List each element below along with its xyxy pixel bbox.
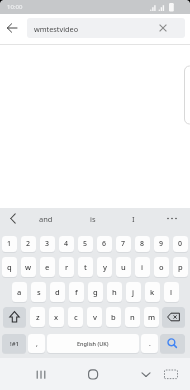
staticText: wmtestvideo <box>34 24 79 34</box>
staticText: j <box>132 287 135 297</box>
staticText: , <box>36 339 38 348</box>
button[interactable]: e <box>40 257 55 277</box>
staticText: !#1 <box>10 340 19 348</box>
button[interactable]: j <box>126 282 141 302</box>
button[interactable] <box>160 210 184 227</box>
button[interactable]: I <box>115 210 151 227</box>
staticText: 4 <box>64 239 69 249</box>
staticText: x <box>54 312 59 322</box>
staticText: b <box>111 312 116 322</box>
button[interactable]: d <box>50 282 65 302</box>
button[interactable]: z <box>30 307 45 327</box>
button[interactable]: 0 <box>173 236 188 252</box>
button[interactable]: c <box>68 307 83 327</box>
staticText: 2 <box>26 239 31 249</box>
staticText: u <box>121 262 126 272</box>
button[interactable] <box>85 366 101 382</box>
staticText: v <box>93 312 97 322</box>
button[interactable] <box>160 334 185 353</box>
staticText: k <box>150 287 155 297</box>
button[interactable]: r <box>59 257 74 277</box>
staticText: 6 <box>102 239 107 249</box>
button[interactable]: 1 <box>2 236 17 252</box>
button[interactable]: u <box>116 257 131 277</box>
button[interactable]: n <box>125 307 140 327</box>
button[interactable]: . <box>141 334 158 353</box>
staticText: d <box>55 287 60 297</box>
button[interactable] <box>162 307 185 327</box>
button[interactable]: i <box>135 257 150 277</box>
staticText: 5 <box>83 239 88 249</box>
staticText: f <box>75 287 78 297</box>
button[interactable]: 9 <box>154 236 169 252</box>
button[interactable] <box>4 20 20 36</box>
button[interactable] <box>33 366 49 382</box>
button[interactable]: l <box>164 282 179 302</box>
staticText: 7 <box>121 239 126 249</box>
staticText: r <box>65 262 69 272</box>
staticText: y <box>103 262 107 272</box>
staticText: e <box>45 262 50 272</box>
button[interactable] <box>3 307 26 327</box>
button[interactable]: 5 <box>78 236 93 252</box>
button[interactable] <box>4 210 22 227</box>
button[interactable]: 6 <box>97 236 112 252</box>
staticText: 1 <box>7 239 12 249</box>
button[interactable]: and <box>27 210 65 227</box>
staticText: a <box>17 287 22 297</box>
staticText: . <box>149 339 151 348</box>
button[interactable]: w <box>21 257 36 277</box>
staticText: i <box>141 262 144 272</box>
button[interactable]: a <box>12 282 27 302</box>
button[interactable]: s <box>31 282 46 302</box>
button[interactable]: !#1 <box>2 334 26 353</box>
button[interactable]: o <box>154 257 169 277</box>
button[interactable] <box>163 367 179 381</box>
staticText: z <box>36 312 40 322</box>
staticText: 10:00 <box>7 3 23 11</box>
button[interactable]: m <box>144 307 159 327</box>
staticText: h <box>112 287 117 297</box>
button[interactable]: y <box>97 257 112 277</box>
staticText: 3 <box>45 239 50 249</box>
button[interactable]: 4 <box>59 236 74 252</box>
staticText: 8 <box>140 239 145 249</box>
staticText: s <box>37 287 41 297</box>
staticText: t <box>84 262 87 272</box>
button[interactable]: f <box>69 282 84 302</box>
button[interactable]: 7 <box>116 236 131 252</box>
staticText: is <box>90 214 96 224</box>
button[interactable]: b <box>106 307 121 327</box>
staticText: n <box>130 312 135 322</box>
staticText: English (UK) <box>77 340 109 347</box>
button[interactable]: g <box>88 282 103 302</box>
staticText: q <box>7 262 12 272</box>
button[interactable] <box>138 366 154 382</box>
button[interactable]: v <box>87 307 102 327</box>
button[interactable]: , <box>28 334 45 353</box>
button[interactable]: x <box>49 307 64 327</box>
button[interactable]: wmtestvideo <box>27 18 185 38</box>
button[interactable]: 2 <box>21 236 36 252</box>
button[interactable]: q <box>2 257 17 277</box>
button[interactable]: p <box>173 257 188 277</box>
button[interactable]: h <box>107 282 122 302</box>
staticText: g <box>93 287 98 297</box>
button[interactable]: 8 <box>135 236 150 252</box>
staticText: 0 <box>178 239 183 249</box>
button[interactable]: English (UK) <box>47 334 139 353</box>
staticText: 9 <box>159 239 164 249</box>
button[interactable]: t <box>78 257 93 277</box>
staticText: o <box>159 262 164 272</box>
button[interactable]: is <box>74 210 112 227</box>
staticText: m <box>148 312 156 322</box>
staticText: I <box>132 214 135 224</box>
staticText: p <box>178 262 183 272</box>
staticText: and <box>39 214 53 224</box>
staticText: w <box>25 262 32 272</box>
staticText: c <box>74 312 78 322</box>
button[interactable]: k <box>145 282 160 302</box>
button[interactable]: 3 <box>40 236 55 252</box>
staticText: l <box>170 287 173 297</box>
